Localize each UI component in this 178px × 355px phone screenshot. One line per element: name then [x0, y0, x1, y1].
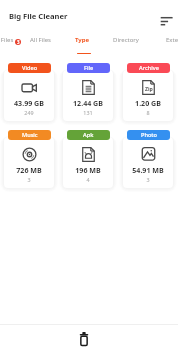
button[interactable]: Sort — [151, 7, 173, 29]
staticText: 54.91 MB — [132, 165, 164, 175]
staticText: 726 MB — [16, 165, 42, 175]
staticText: 8 — [146, 109, 150, 116]
staticText: 1.20 GB — [135, 98, 161, 108]
staticText: Video — [22, 64, 38, 72]
staticText: 249 — [24, 109, 34, 116]
button[interactable]: Directory — [113, 36, 139, 46]
button[interactable]: 196 MB — [63, 130, 113, 188]
staticText: Photo — [141, 131, 157, 139]
staticText: 131 — [83, 109, 93, 116]
staticText: 12.44 GB — [73, 98, 103, 108]
button[interactable]: 54.91 MB — [123, 130, 173, 188]
staticText: Extension — [166, 36, 178, 44]
button[interactable]: Delete — [70, 324, 98, 352]
staticText: All Files — [30, 36, 51, 44]
button[interactable]: 726 MB — [4, 130, 54, 188]
staticText: Zip — [145, 85, 153, 92]
staticText: 3 — [17, 39, 20, 45]
button[interactable]: 12.44 GB — [63, 63, 113, 121]
staticText: Big File Cleaner — [9, 11, 68, 21]
staticText: Apk — [83, 131, 94, 139]
staticText: Archive — [139, 64, 159, 72]
button[interactable]: Junk Files — [0, 36, 14, 46]
button[interactable]: Big File Cleaner — [9, 11, 68, 21]
button[interactable]: Extension — [166, 36, 178, 46]
staticText: 196 MB — [75, 165, 101, 175]
staticText: File — [84, 64, 94, 72]
button[interactable]: Type — [75, 36, 90, 46]
staticText: 3 — [146, 176, 150, 183]
staticText: 4 — [86, 176, 90, 183]
button[interactable]: 43.99 GB — [4, 63, 54, 121]
staticText: Directory — [113, 36, 139, 44]
button[interactable]: Zip — [123, 63, 173, 121]
staticText: 43.99 GB — [14, 98, 44, 108]
button[interactable]: All Files — [30, 36, 51, 46]
staticText: Music — [22, 131, 38, 139]
staticText: Junk Files — [0, 36, 14, 44]
staticText: 3 — [27, 176, 31, 183]
staticText: Type — [75, 36, 90, 44]
